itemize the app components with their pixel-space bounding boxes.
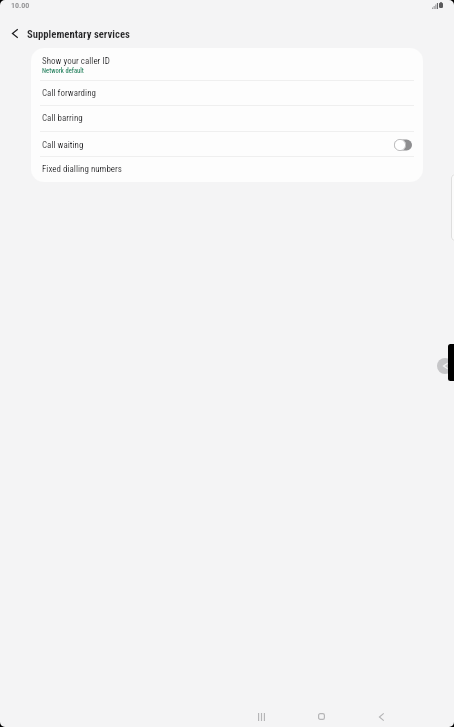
staticText: Show your caller ID [42, 56, 110, 67]
staticText: Supplementary services [27, 28, 130, 41]
button[interactable]: Close edge panel [437, 358, 453, 374]
staticText: Call waiting [42, 140, 394, 151]
staticText: 10.00 [11, 1, 30, 10]
button[interactable]: Recent apps [239, 706, 283, 727]
staticText: Network default [42, 67, 84, 75]
button[interactable]: Home [299, 706, 343, 727]
button[interactable]: Call waiting [31, 132, 423, 158]
button[interactable]: Back [359, 706, 403, 727]
button[interactable]: Call barring [31, 106, 423, 131]
button[interactable]: Call forwarding [31, 81, 423, 106]
button[interactable]: Show your caller ID [31, 48, 423, 80]
button[interactable]: Open edge panel [448, 344, 454, 381]
staticText: Call barring [42, 113, 83, 124]
button[interactable]: Call waiting switch, off [394, 139, 412, 151]
staticText: Fixed dialling numbers [42, 164, 122, 175]
button[interactable]: Fixed dialling numbers [31, 157, 423, 182]
staticText: Call forwarding [42, 88, 96, 99]
button[interactable]: Navigate up [1, 19, 29, 47]
